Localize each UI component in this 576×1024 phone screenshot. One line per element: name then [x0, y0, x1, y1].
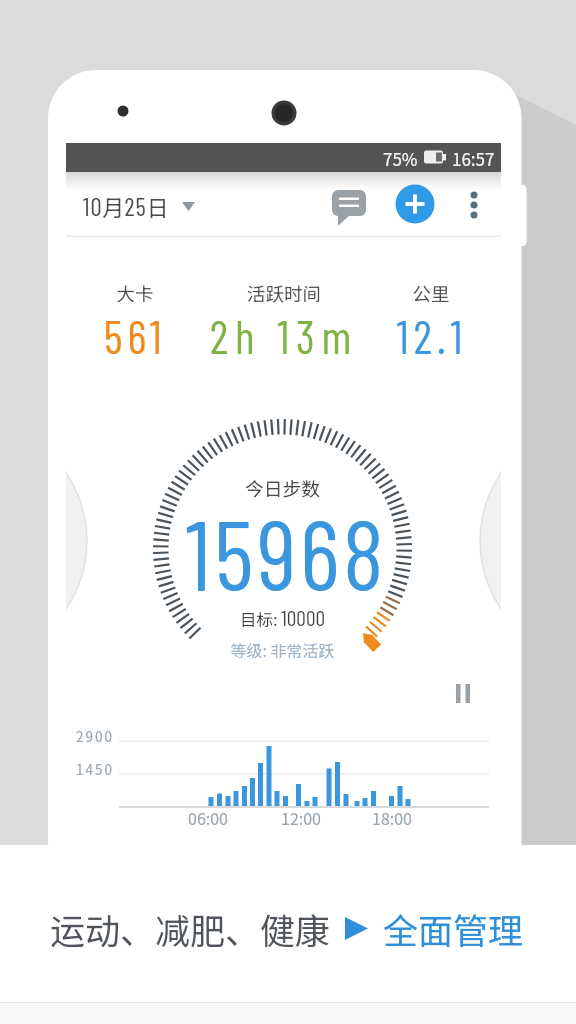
staticText: 等级: 非常活跃 [66, 638, 499, 661]
staticText: 06:00 [178, 806, 238, 829]
staticText: 运动、减肥、健康 [50, 903, 331, 954]
button[interactable] [458, 184, 492, 226]
staticText: 公里 [361, 280, 501, 307]
staticText: 16:57 [452, 146, 495, 171]
staticText: 2h 13m [204, 308, 364, 363]
button[interactable]: 10月25日 [76, 182, 198, 226]
staticText: 561 [55, 308, 215, 363]
staticText: 18:00 [362, 806, 422, 829]
staticText: 2900 [74, 726, 114, 746]
staticText: 全面管理 [383, 903, 524, 954]
staticText: 活跃时间 [214, 280, 354, 307]
staticText: 75% [383, 146, 418, 171]
staticText: 10月25日 [83, 190, 169, 222]
staticText: 15968 [70, 494, 503, 610]
button[interactable] [327, 186, 371, 226]
button[interactable] [395, 184, 435, 224]
staticText: 12:00 [271, 806, 331, 829]
staticText: 大卡 [65, 280, 205, 307]
staticText: 目标: 10000 [66, 604, 499, 630]
staticText: 今日步数 [66, 474, 499, 501]
staticText: 1450 [74, 759, 114, 779]
button[interactable]: 全面管理 [345, 901, 535, 955]
staticText: 12.1 [352, 308, 512, 363]
button[interactable] [448, 676, 482, 710]
